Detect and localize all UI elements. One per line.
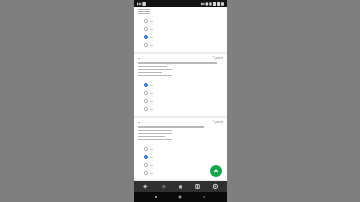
button[interactable]: [134, 17, 227, 25]
button[interactable]: Settings: [210, 181, 221, 192]
button[interactable]: [134, 105, 227, 113]
button[interactable]: Back: [140, 181, 151, 192]
button[interactable]: Home: [175, 192, 185, 202]
button[interactable]: [134, 169, 227, 177]
button[interactable]: [134, 81, 227, 89]
button[interactable]: [134, 145, 227, 153]
button[interactable]: Forward: [158, 181, 169, 192]
button[interactable]: Tabs: [192, 181, 203, 192]
button[interactable]: Back: [199, 192, 209, 202]
button[interactable]: [134, 161, 227, 169]
staticText: 1 point: [213, 56, 223, 60]
button[interactable]: [134, 41, 227, 49]
staticText: 1 point: [213, 120, 223, 124]
button[interactable]: [134, 153, 227, 161]
button[interactable]: [134, 25, 227, 33]
button[interactable]: [134, 89, 227, 97]
button[interactable]: Recents: [151, 192, 161, 202]
button[interactable]: [134, 33, 227, 41]
button[interactable]: [134, 97, 227, 105]
button[interactable]: Home: [175, 181, 186, 192]
button[interactable]: Scroll to top: [210, 165, 222, 177]
